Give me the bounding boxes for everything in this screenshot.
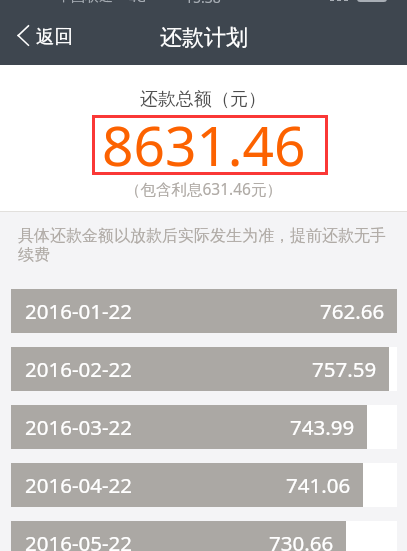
staticText: 2016-03-22: [25, 413, 133, 441]
staticText: 还款总额（元）: [140, 88, 266, 111]
button[interactable]: 2016-03-22: [11, 405, 397, 449]
staticText: 15:38: [185, 0, 221, 7]
staticText: 2016-02-22: [25, 355, 133, 383]
staticText: 具体还款金额以放款后实际发生为准，提前还款无手续费: [18, 226, 399, 265]
staticText: 762.66: [320, 297, 385, 325]
staticText: 730.66: [269, 529, 334, 551]
staticText: 还款计划: [160, 24, 248, 52]
staticText: 743.99: [290, 413, 355, 441]
staticText: 4G: [129, 0, 146, 6]
staticText: （包含利息631.46元）: [125, 178, 282, 199]
staticText: 2016-05-22: [25, 529, 133, 551]
button[interactable]: 2016-05-22: [11, 521, 397, 551]
staticText: 8631.46: [102, 107, 306, 182]
button[interactable]: Back: [17, 24, 73, 47]
button[interactable]: 2016-02-22: [11, 347, 397, 391]
staticText: 2016-01-22: [25, 297, 133, 325]
button[interactable]: 2016-04-22: [11, 463, 397, 507]
staticText: 757.59: [312, 355, 377, 383]
staticText: 741.06: [286, 471, 351, 499]
staticText: 返回: [36, 25, 73, 48]
button[interactable]: 2016-01-22: [11, 289, 397, 333]
staticText: 中国联通: [57, 0, 113, 6]
staticText: 2016-04-22: [25, 471, 133, 499]
